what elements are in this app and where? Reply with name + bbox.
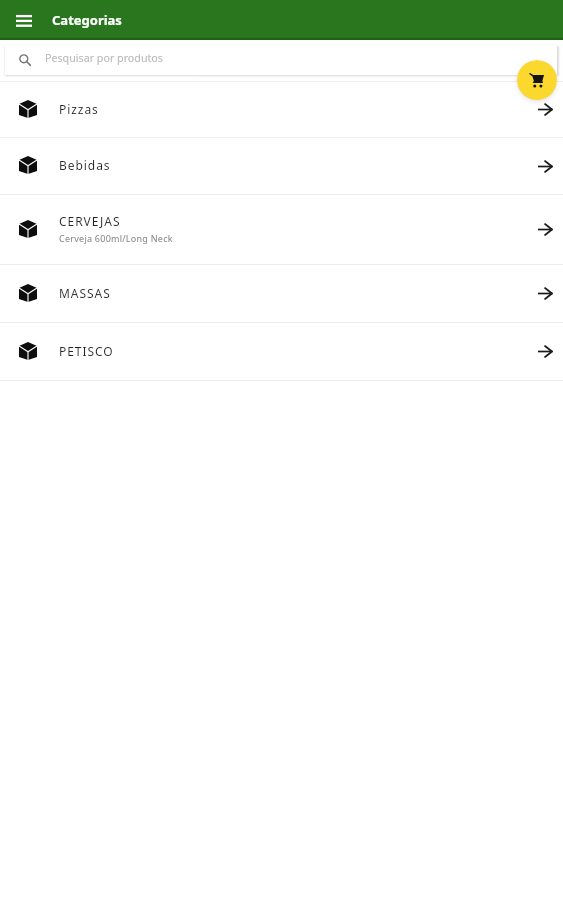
button[interactable]: Carrinho de compras	[517, 60, 557, 100]
button[interactable]: PETISCO	[0, 323, 563, 380]
staticText: CERVEJAS	[59, 213, 121, 229]
button[interactable]: Pizzas	[0, 82, 563, 137]
staticText: Cerveja 600ml/Long Neck	[59, 232, 173, 244]
button[interactable]: Bebidas	[0, 138, 563, 194]
staticText: Pizzas	[59, 101, 99, 117]
button[interactable]: CERVEJAS	[0, 195, 563, 264]
staticText: Bebidas	[59, 157, 111, 173]
button[interactable]: Pesquisar por produtos	[5, 45, 557, 75]
button[interactable]: Abrir menu	[15, 8, 32, 32]
staticText: PETISCO	[59, 343, 114, 359]
staticText: Categorias	[52, 11, 122, 29]
staticText: Pesquisar por produtos	[45, 51, 163, 66]
button[interactable]: MASSAS	[0, 265, 563, 322]
staticText: MASSAS	[59, 285, 111, 301]
